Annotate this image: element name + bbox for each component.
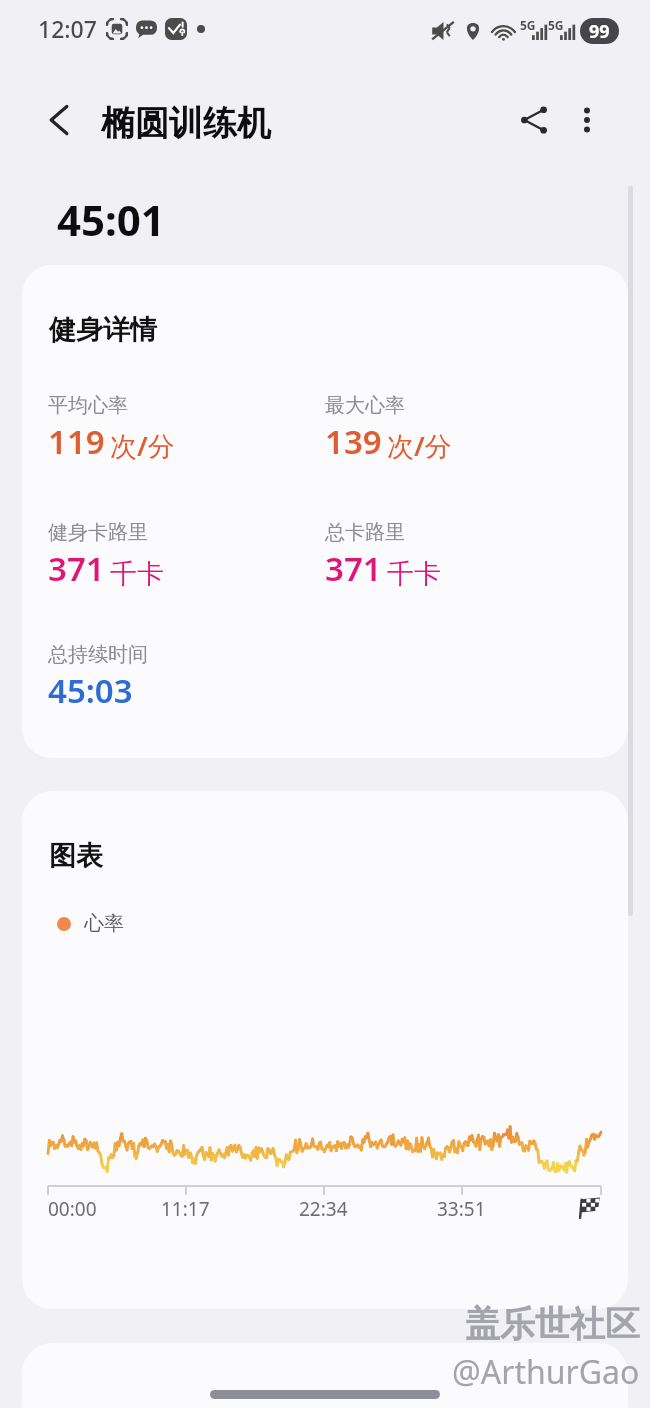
staticText: 139 (325, 419, 382, 464)
staticText: 椭圆训练机 (101, 102, 271, 145)
staticText: 千卡 (110, 557, 164, 591)
staticText: 45:01 (57, 191, 165, 248)
staticText: 119 (48, 419, 105, 464)
staticText: 图表 (49, 839, 103, 873)
staticText: 12:07 (38, 13, 97, 44)
staticText: 最大心率 (325, 393, 405, 418)
staticText: 00:00 (48, 1196, 97, 1222)
button[interactable]: More options (559, 92, 615, 148)
staticText: 33:51 (437, 1196, 486, 1222)
staticText: 99 (589, 19, 610, 44)
staticText: 5G (520, 17, 536, 33)
button[interactable]: Back (32, 92, 88, 148)
button[interactable]: 心率 (57, 911, 130, 936)
staticText: 次/分 (387, 427, 452, 464)
staticText: 总持续时间 (48, 642, 148, 667)
staticText: 平均心率 (48, 393, 128, 418)
staticText: 健身详情 (49, 313, 157, 347)
staticText: 千卡 (387, 557, 441, 591)
staticText: 次/分 (110, 427, 175, 464)
staticText: 11:17 (161, 1196, 210, 1222)
button[interactable]: Share (506, 92, 562, 148)
staticText: 22:34 (299, 1196, 348, 1222)
staticText: 心率 (84, 911, 124, 936)
staticText: 371 (325, 546, 382, 591)
staticText: 盖乐世社区 (465, 1302, 640, 1346)
staticText: 45:03 (48, 668, 133, 713)
staticText: 5G (548, 17, 564, 33)
staticText: 总卡路里 (325, 520, 405, 545)
staticText: @ArthurGao (452, 1350, 640, 1394)
staticText: 健身卡路里 (48, 520, 148, 545)
staticText: 371 (48, 546, 105, 591)
